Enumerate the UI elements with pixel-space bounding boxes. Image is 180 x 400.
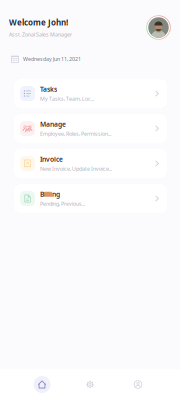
staticText: Manage [40,120,66,129]
staticText: Wednesday Jun 11, 2021 [23,55,81,63]
staticText: Employee, Roles, Permission... [40,130,111,137]
staticText: Invoice [40,155,63,164]
staticText: Billing [40,190,60,199]
button[interactable]: Settings [66,369,114,399]
staticText: Welcome John! [9,17,68,28]
button[interactable]: Tasks [14,79,167,108]
button[interactable]: Profile [146,15,171,40]
button[interactable]: Billing [14,184,167,213]
staticText: New Invoice, Update Invoice... [40,165,112,172]
staticText: My Tasks, Team, Loc... [40,95,94,102]
staticText: Tasks [40,85,57,94]
button[interactable]: Invoice [14,149,167,178]
staticText: Pending, Previous... [40,200,85,207]
button[interactable]: Home [18,369,66,399]
button[interactable]: Manage [14,114,167,143]
button[interactable]: Account [114,369,162,399]
staticText: Asst. Zonal Sales Manager [9,31,72,38]
